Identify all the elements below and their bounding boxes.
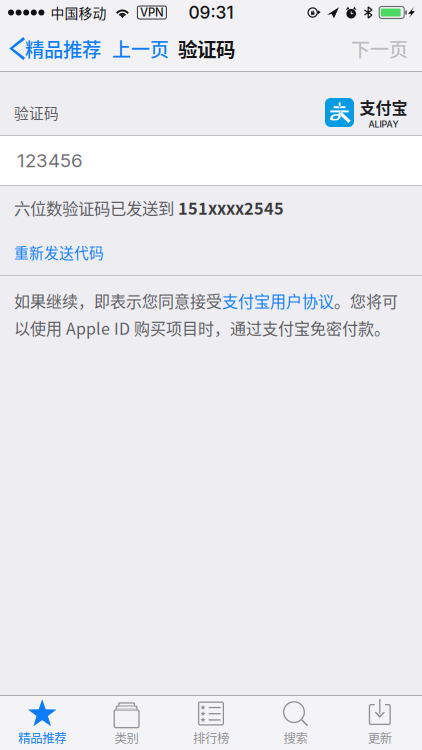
staticText: 验证码 [178,34,235,63]
staticText: 六位数验证码已发送到 [14,196,178,219]
staticText: 精品推荐 [25,34,101,62]
staticText: 类别 [115,728,139,746]
staticText: 中国移动 [50,2,106,23]
staticText: 排行榜 [193,728,229,746]
button[interactable]: 搜索 [253,696,338,750]
staticText: 支付宝用户协议 [222,289,334,312]
staticText: 以使用 Apple ID 购买项目时，通过支付宝免密付款。 [14,316,390,339]
staticText: 重新发送代码 [14,241,104,263]
button[interactable]: 精品推荐 [0,696,84,750]
button[interactable]: 下一页 [351,26,408,71]
staticText: 。您将可 [334,289,398,312]
staticText: 支付宝 [359,95,407,118]
staticText: ALIPAY [368,119,398,130]
button[interactable]: 上一页 [101,26,170,71]
button[interactable]: 精品推荐 [6,25,101,71]
staticText: 下一页 [351,35,408,62]
staticText: 09:31 [188,2,233,23]
staticText: 如果继续，即表示您同意接受 [14,289,222,312]
staticText: 123456 [17,149,83,172]
staticText: 精品推荐 [18,728,66,746]
staticText: 上一页 [112,35,169,62]
button[interactable]: 类别 [84,696,169,750]
staticText: VPN [140,6,164,19]
staticText: 验证码 [14,102,59,123]
staticText: 151xxxx2545 [178,196,284,219]
staticText: 更新 [368,728,392,746]
staticText: 搜索 [283,728,307,746]
button[interactable]: 排行榜 [169,696,253,750]
button[interactable]: 更新 [338,696,422,750]
button[interactable]: 重新发送代码 [0,229,422,275]
